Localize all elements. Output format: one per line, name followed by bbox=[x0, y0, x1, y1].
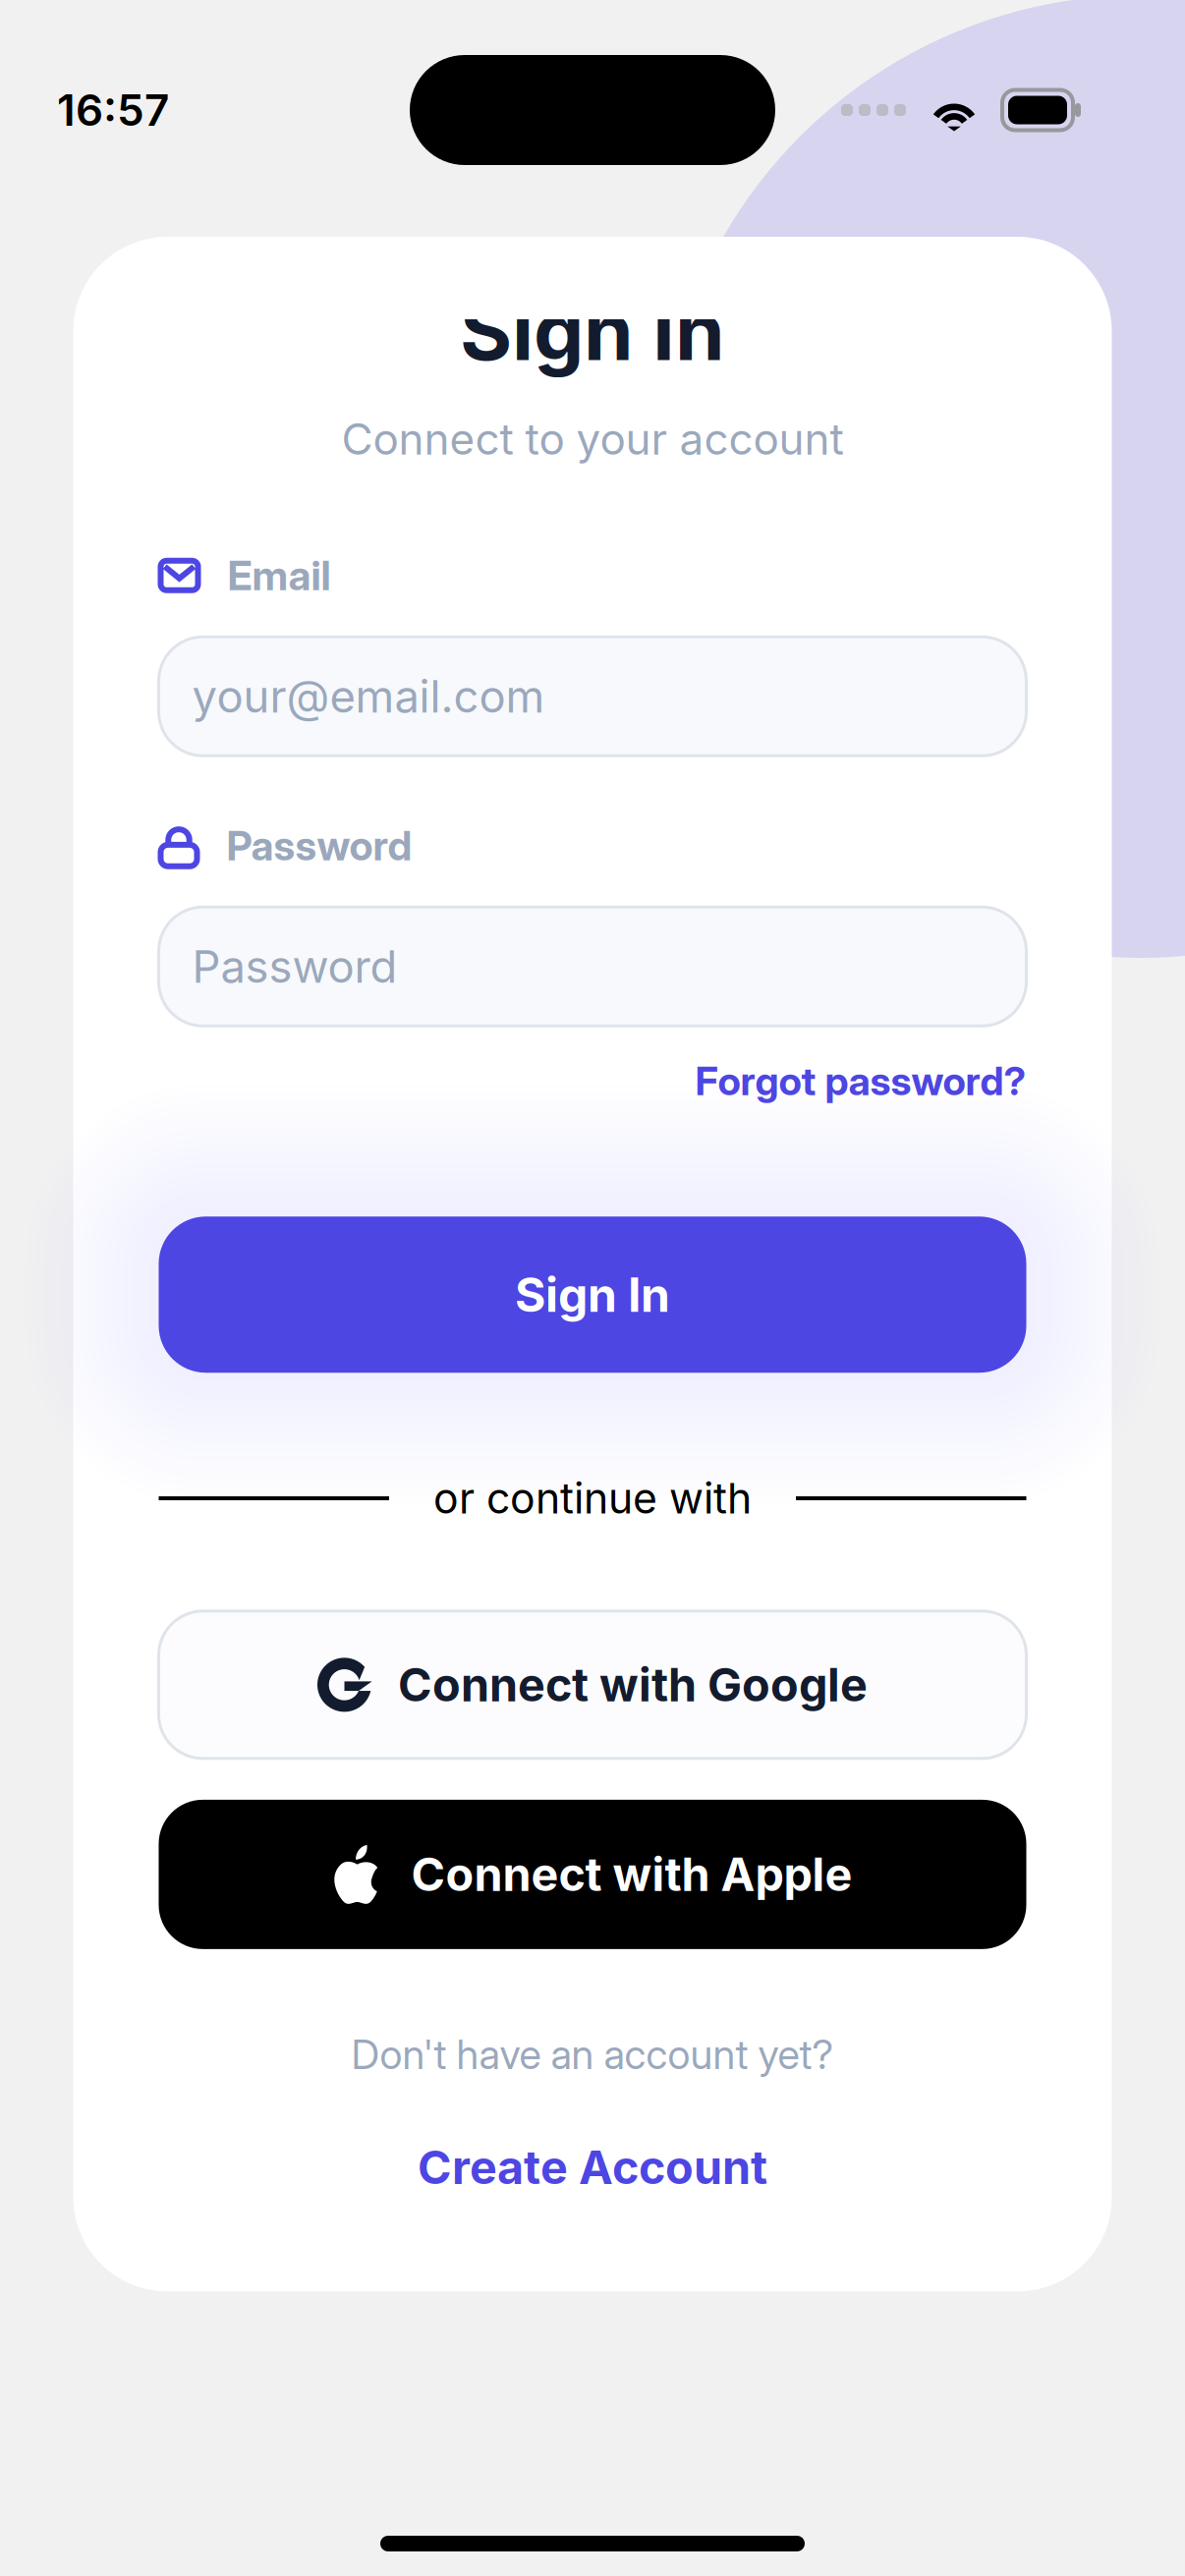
staticText: Create Account bbox=[418, 2140, 767, 2195]
staticText: Email bbox=[227, 551, 331, 600]
staticText: Connect to your account bbox=[341, 413, 844, 465]
staticText: 16:57 bbox=[57, 84, 169, 136]
staticText: Connect with Google bbox=[398, 1657, 868, 1713]
staticText: Connect with Apple bbox=[411, 1847, 852, 1902]
button[interactable]: Sign In bbox=[159, 1216, 1026, 1373]
staticText: or continue with bbox=[433, 1473, 752, 1524]
button[interactable]: Forgot password? bbox=[159, 1050, 1026, 1111]
staticText: Password bbox=[226, 821, 412, 870]
staticText: Sign In bbox=[515, 1266, 670, 1323]
staticText: Don't have an account yet? bbox=[351, 2030, 834, 2079]
staticText: Sign In bbox=[460, 283, 725, 379]
staticText: Password bbox=[192, 940, 397, 993]
button[interactable]: Create Account bbox=[418, 2140, 767, 2195]
button[interactable]: Connect with Google bbox=[159, 1611, 1026, 1758]
button[interactable]: Connect with Apple bbox=[159, 1800, 1026, 1949]
staticText: Forgot password? bbox=[695, 1057, 1026, 1105]
staticText: your@email.com bbox=[192, 669, 545, 723]
